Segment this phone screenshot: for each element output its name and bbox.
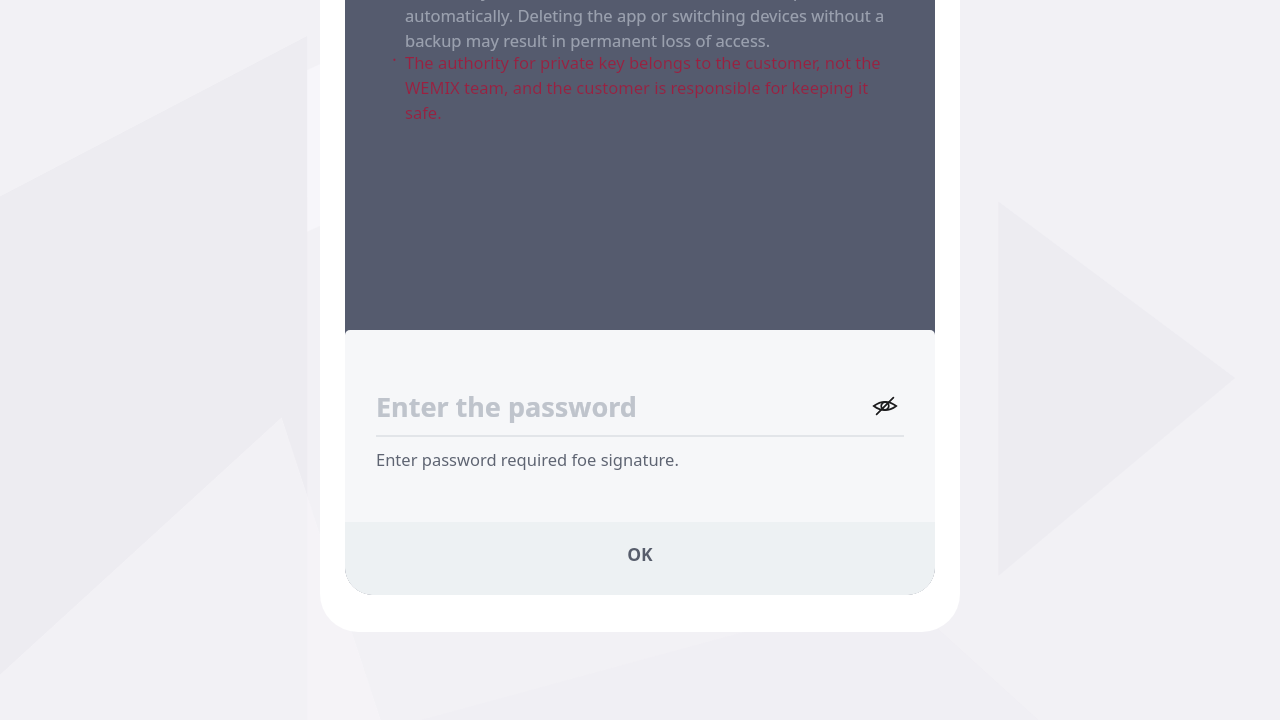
staticText: Enter password required foe signature. [376,448,679,470]
button[interactable]: OK [345,522,935,595]
staticText: · [392,47,397,72]
staticText: The authority for private key belongs to… [405,51,893,123]
button[interactable]: Show password [865,386,905,426]
button[interactable]: Enter the password [345,382,935,430]
staticText: Private keys stored on the device are no… [405,0,893,51]
staticText: OK [627,542,653,566]
staticText: Enter the password [376,388,637,425]
